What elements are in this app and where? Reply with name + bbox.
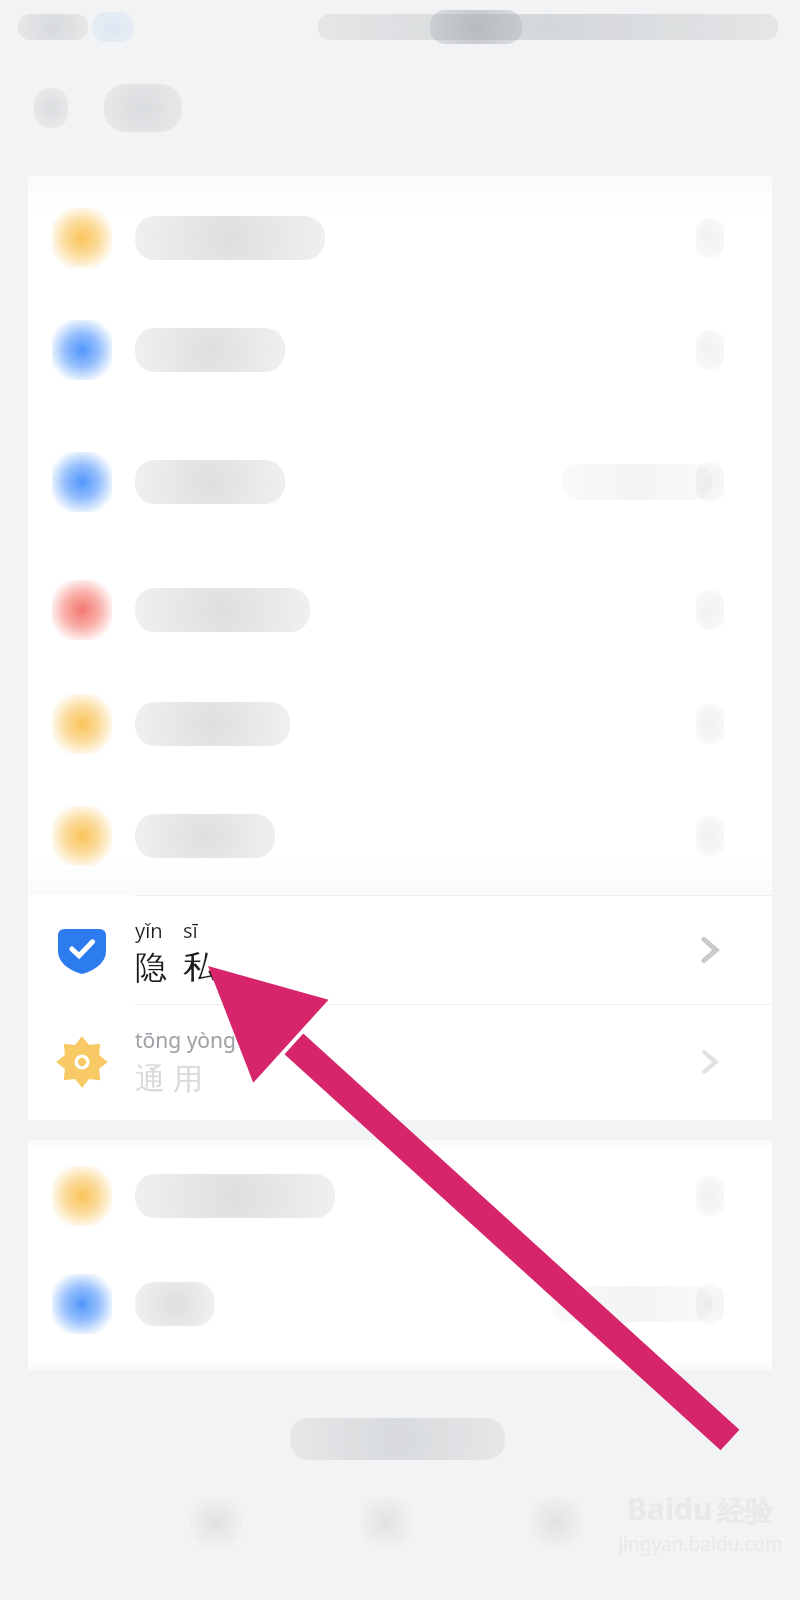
button[interactable]: yǐn — [28, 895, 772, 1005]
staticText: Bai — [627, 1488, 674, 1529]
button[interactable]: tōng yòng — [28, 1007, 772, 1117]
staticText: 隐 — [135, 947, 175, 987]
staticText: du — [674, 1488, 713, 1529]
staticText: jingyan.baidu.com — [618, 1531, 783, 1557]
staticText: tōng yòng — [135, 1026, 236, 1055]
staticText: 通 用 — [135, 1057, 203, 1098]
staticText: sī — [183, 917, 198, 944]
other: Open privacy settings — [688, 928, 732, 972]
staticText: yǐn — [135, 917, 175, 944]
staticText: 私 — [183, 947, 215, 987]
staticText: 经验 — [717, 1494, 773, 1529]
